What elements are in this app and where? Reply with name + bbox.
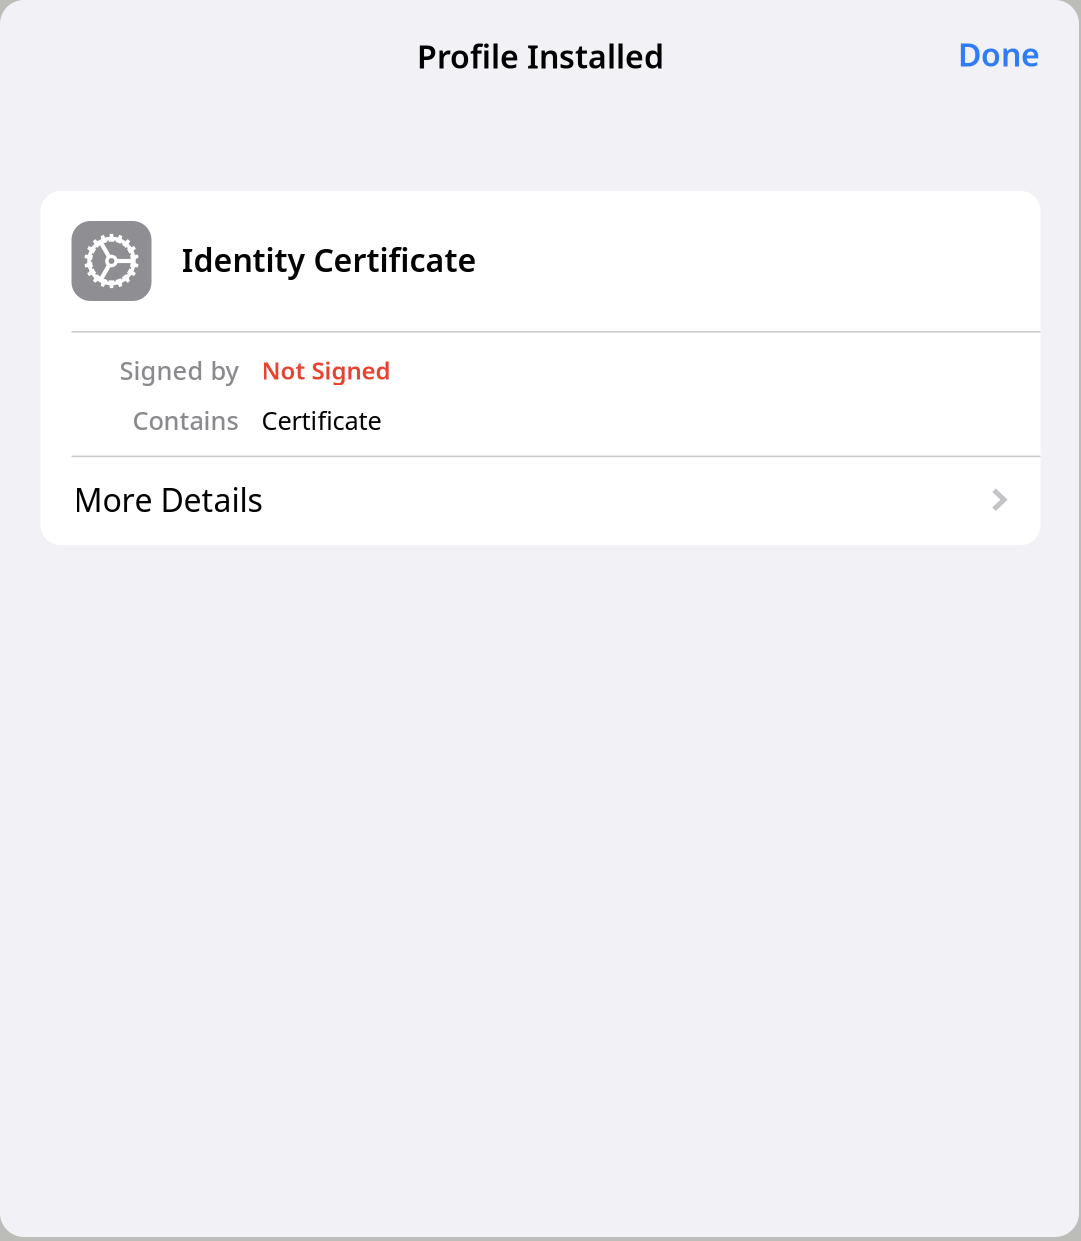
button[interactable]: More Details xyxy=(40,457,1040,545)
button[interactable]: Done xyxy=(941,31,1057,84)
staticText: Identity Certificate xyxy=(181,238,476,281)
staticText: Done xyxy=(958,33,1040,75)
staticText: Not Signed xyxy=(261,354,390,386)
staticText: Contains xyxy=(132,403,238,437)
staticText: More Details xyxy=(73,478,262,521)
staticText: Certificate xyxy=(261,403,381,437)
staticText: Signed by xyxy=(119,353,238,387)
staticText: Profile Installed xyxy=(417,35,664,77)
